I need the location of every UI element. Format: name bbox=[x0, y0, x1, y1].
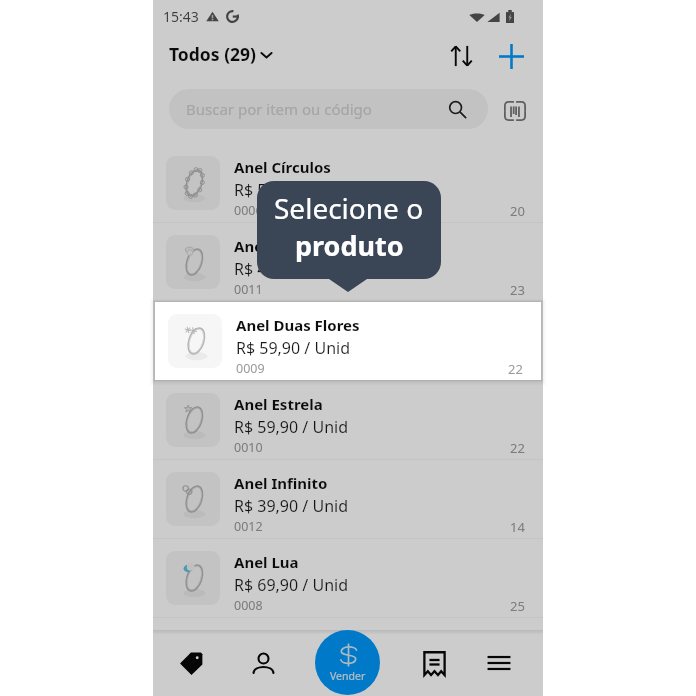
button[interactable]: Menu bbox=[471, 630, 527, 696]
staticText: 20 bbox=[510, 202, 525, 220]
staticText: Anel Estrela bbox=[234, 394, 323, 414]
button[interactable]: Todos (29) bbox=[169, 38, 274, 70]
staticText: 0010 bbox=[234, 439, 263, 456]
staticText: Anel Infinito bbox=[234, 473, 328, 493]
button[interactable]: Add product bbox=[491, 36, 531, 76]
staticText: 0006 bbox=[234, 202, 263, 219]
button[interactable]: Receipts bbox=[406, 630, 462, 696]
staticText: R$ 59,90 / Unid bbox=[236, 337, 350, 359]
staticText: produto bbox=[295, 227, 404, 264]
button[interactable]: Sort bbox=[441, 36, 481, 76]
staticText: 22 bbox=[510, 360, 525, 378]
staticText: 0011 bbox=[234, 281, 263, 298]
button[interactable]: Scan barcode bbox=[495, 89, 535, 129]
button[interactable]: Anel Círculos bbox=[153, 144, 543, 223]
staticText: 23 bbox=[510, 281, 525, 299]
staticText: R$ 59,90 / Unid bbox=[234, 179, 348, 201]
button[interactable]: Buscar por item ou código bbox=[169, 89, 488, 129]
staticText: Anel Borboleta bbox=[234, 236, 346, 256]
staticText: R$ 69,90 / Unid bbox=[234, 574, 348, 596]
staticText: Anel Lua bbox=[234, 552, 299, 572]
staticText: Anel Círculos bbox=[234, 157, 331, 177]
button[interactable]: Customers bbox=[235, 630, 291, 696]
staticText: R$ 49,90 / Unid bbox=[234, 258, 348, 280]
staticText: 15:43 bbox=[163, 7, 199, 26]
staticText: 0012 bbox=[234, 518, 263, 535]
staticText: R$ 59,90 / Unid bbox=[234, 416, 348, 438]
staticText: 14 bbox=[510, 518, 525, 536]
staticText: 25 bbox=[510, 597, 525, 615]
staticText: Buscar por item ou código bbox=[186, 99, 372, 119]
staticText: Todos (29) bbox=[169, 42, 257, 66]
button[interactable]: Products bbox=[164, 630, 220, 696]
staticText: Selecione o bbox=[274, 189, 424, 227]
staticText: 0009 bbox=[236, 360, 265, 377]
staticText: Anel Duas Flores bbox=[234, 315, 358, 335]
staticText: 22 bbox=[510, 439, 525, 457]
staticText: R$ 39,90 / Unid bbox=[234, 495, 348, 517]
button[interactable]: Anel Duas Flores bbox=[155, 302, 541, 380]
button[interactable]: Anel Lua bbox=[153, 539, 543, 618]
staticText: 0009 bbox=[234, 360, 263, 377]
staticText: Anel Duas Flores bbox=[236, 315, 360, 335]
staticText: 0008 bbox=[234, 597, 263, 614]
button[interactable]: Anel Borboleta bbox=[153, 223, 543, 302]
staticText: 22 bbox=[508, 360, 523, 378]
button[interactable]: Anel Estrela bbox=[153, 381, 543, 460]
staticText: Vender bbox=[330, 669, 366, 683]
button[interactable]: Vender bbox=[315, 630, 380, 695]
staticText: R$ 59,90 / Unid bbox=[234, 337, 348, 359]
button[interactable]: Anel Duas Flores bbox=[153, 302, 543, 381]
button[interactable]: Anel Infinito bbox=[153, 460, 543, 539]
